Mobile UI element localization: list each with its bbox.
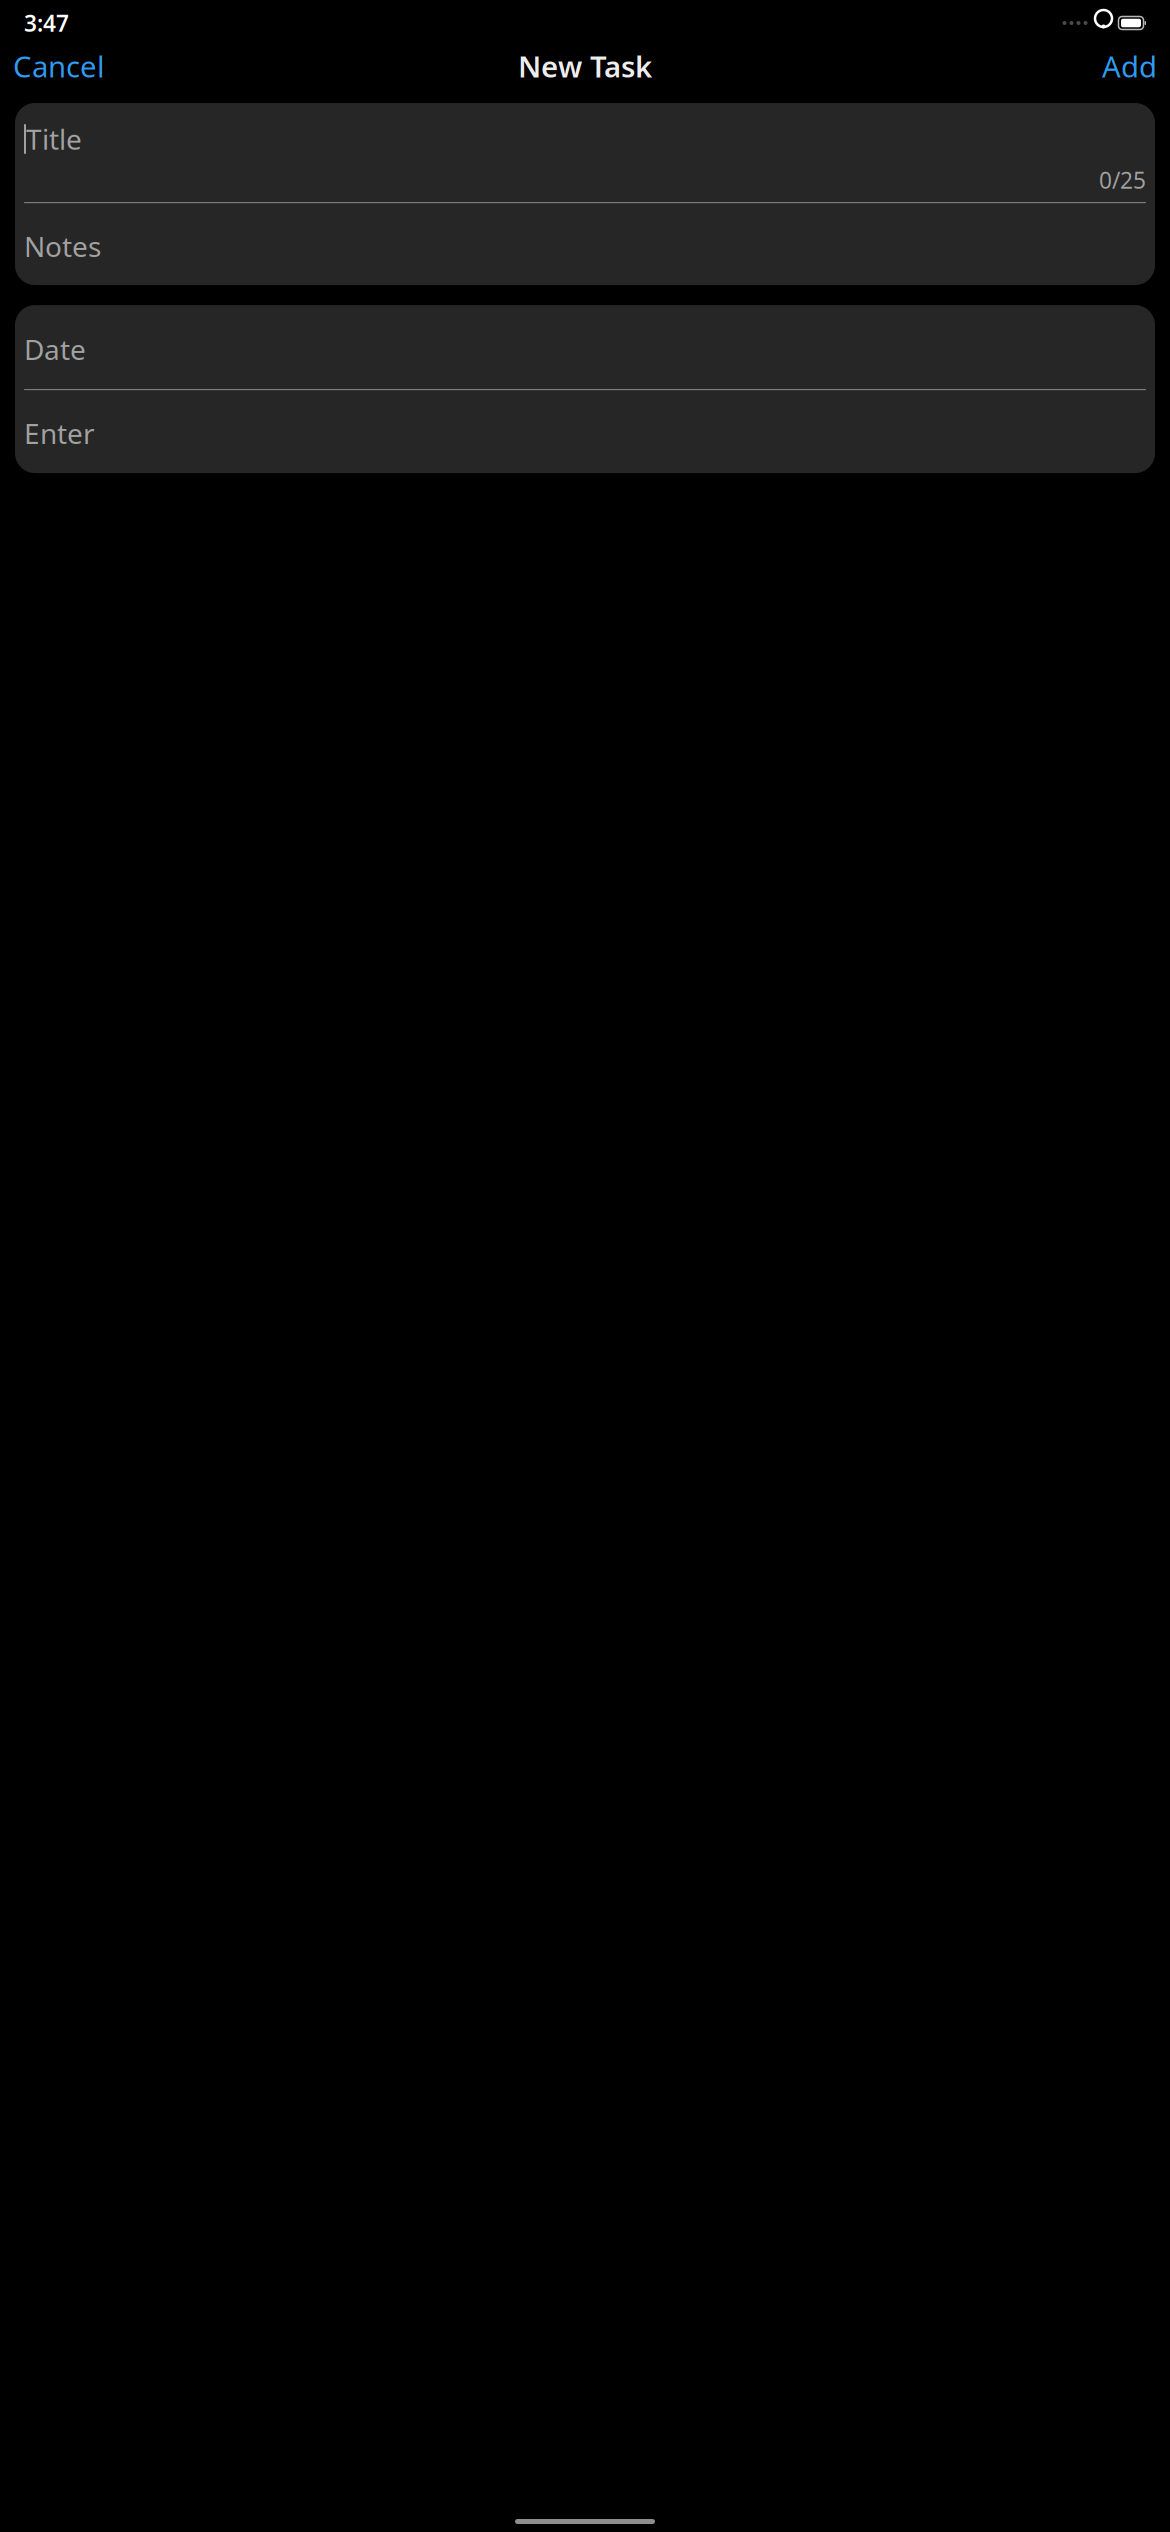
- staticText: Add: [1102, 46, 1157, 85]
- button[interactable]: Cancel: [9, 38, 109, 93]
- staticText: 3:47: [24, 8, 69, 38]
- staticText: Date: [24, 330, 86, 368]
- button[interactable]: Date: [24, 305, 1146, 366]
- staticText: Title: [26, 120, 82, 158]
- staticText: Notes: [24, 227, 101, 265]
- staticText: Enter: [24, 414, 95, 452]
- staticText: 0/25: [1099, 165, 1146, 195]
- button[interactable]: Add: [1098, 38, 1161, 93]
- button[interactable]: Enter: [24, 390, 1146, 473]
- staticText: New Task: [518, 46, 652, 85]
- button[interactable]: Title: [24, 103, 1146, 161]
- staticText: Cancel: [13, 46, 105, 85]
- button[interactable]: Notes: [24, 203, 1146, 285]
